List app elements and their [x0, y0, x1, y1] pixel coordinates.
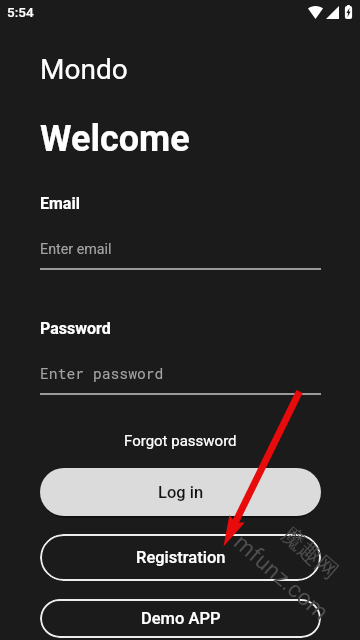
staticText: 5:54: [7, 4, 34, 20]
staticText: Mondo: [40, 53, 128, 86]
staticText: Enter email: [40, 241, 112, 258]
staticText: 魔趣网: [276, 521, 344, 585]
staticText: Log in: [158, 483, 204, 502]
button[interactable]: Registration: [40, 534, 321, 581]
staticText: Password: [40, 319, 111, 338]
staticText: mfunz.com: [228, 529, 334, 626]
button[interactable]: Log in: [40, 468, 321, 516]
other: Cellular signal: [326, 6, 339, 19]
button[interactable]: Forgot password: [124, 424, 237, 456]
button[interactable]: Demo APP: [40, 599, 321, 638]
staticText: Forgot password: [124, 432, 237, 450]
staticText: Demo APP: [141, 609, 221, 628]
button[interactable]: Password input: [40, 354, 321, 396]
staticText: Welcome: [40, 118, 190, 160]
other: Wi-Fi: [308, 6, 323, 19]
staticText: Registration: [136, 548, 226, 567]
staticText: Enter password: [40, 364, 164, 383]
button[interactable]: Email input: [40, 231, 321, 271]
other: Battery charging: [344, 5, 353, 19]
staticText: Email: [40, 194, 80, 213]
